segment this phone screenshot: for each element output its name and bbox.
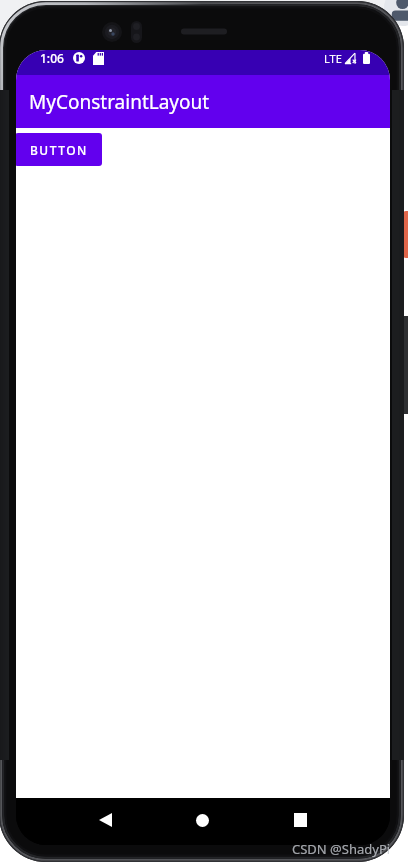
button[interactable]: MyConstraintLayout xyxy=(16,75,390,128)
button[interactable]: Account xyxy=(384,0,408,26)
staticText: BUTTON xyxy=(30,142,88,158)
staticText: LTE xyxy=(324,51,342,66)
staticText: CSDN @ShadyPi xyxy=(292,840,391,858)
button[interactable]: BUTTON xyxy=(16,133,102,166)
staticText: MyConstraintLayout xyxy=(29,89,210,115)
staticText: 1:06 xyxy=(40,50,64,66)
button[interactable]: Recent apps xyxy=(287,807,313,833)
button[interactable]: Home xyxy=(189,807,215,833)
button[interactable]: Back xyxy=(92,807,118,833)
